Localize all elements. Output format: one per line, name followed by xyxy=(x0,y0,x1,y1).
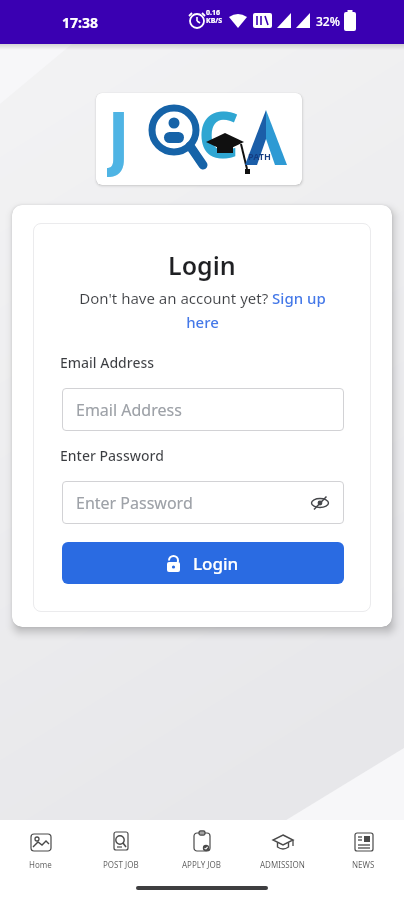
staticText: PATH xyxy=(248,150,271,162)
staticText: APPLY JOB xyxy=(182,859,221,870)
staticText: 32% xyxy=(316,13,340,29)
staticText: Login xyxy=(168,248,236,282)
button[interactable]: NEWS xyxy=(323,830,404,870)
button[interactable]: ADMISSION xyxy=(242,830,323,870)
staticText: C xyxy=(198,93,240,177)
staticText: J xyxy=(107,93,131,179)
staticText: Enter Password xyxy=(76,492,193,514)
button[interactable]: Home xyxy=(0,830,80,870)
button[interactable]: POST JOB xyxy=(80,830,161,870)
button[interactable]: Email Address xyxy=(62,388,344,431)
staticText: Enter Password xyxy=(60,446,164,465)
staticText: Email Address xyxy=(60,353,155,372)
button[interactable]: Enter Password xyxy=(62,481,344,524)
button[interactable]: APPLY JOB xyxy=(161,830,242,870)
staticText: 17:38 xyxy=(62,13,98,32)
staticText: Email Address xyxy=(76,399,182,421)
staticText: ADMISSION xyxy=(260,859,305,870)
staticText: 0.16 KB/S xyxy=(206,8,223,25)
staticText: Login xyxy=(193,552,239,575)
staticText: NEWS xyxy=(352,859,375,870)
staticText: POST JOB xyxy=(103,859,139,870)
button[interactable]: Don't have an account yet? Sign up here xyxy=(79,288,326,332)
staticText: Home xyxy=(29,859,52,870)
button[interactable]: Login xyxy=(62,542,344,584)
